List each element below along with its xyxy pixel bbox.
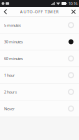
staticText: AUTO-OFF TIMER [20, 9, 59, 14]
staticText: 5 minutes [4, 22, 21, 28]
button[interactable]: Close [68, 7, 79, 16]
button[interactable]: 1 hour [0, 67, 79, 84]
button[interactable]: 60 minutes [0, 50, 79, 67]
staticText: 2 hours [4, 89, 17, 94]
button[interactable]: Back [0, 7, 11, 16]
staticText: 10:16 [68, 1, 77, 6]
button[interactable]: Never [0, 100, 79, 117]
button[interactable]: 5 minutes [0, 17, 79, 34]
button[interactable]: 2 hours [0, 84, 79, 100]
staticText: 60 minutes [4, 56, 23, 61]
staticText: 30 minutes [4, 39, 23, 44]
staticText: 1 hour [4, 72, 15, 78]
staticText: Never [4, 106, 15, 111]
button[interactable]: 30 minutes [0, 34, 79, 50]
